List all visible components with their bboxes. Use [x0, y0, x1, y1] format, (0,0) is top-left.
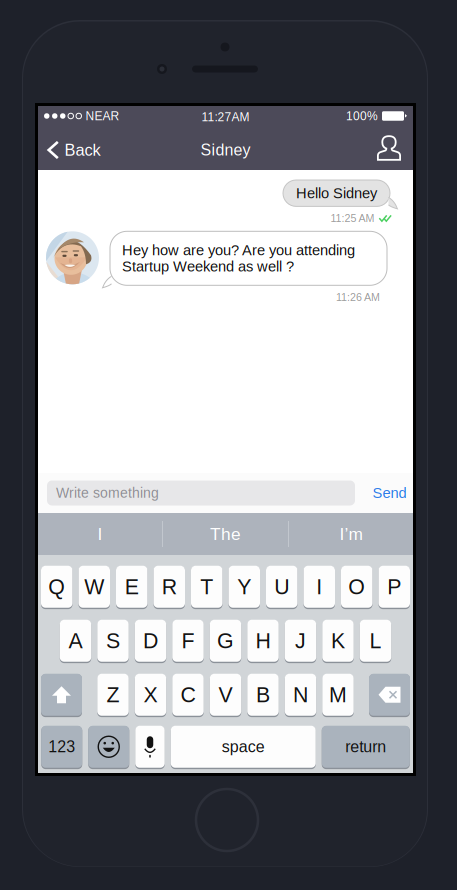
- button[interactable]: P: [378, 565, 410, 608]
- button[interactable]: K: [322, 619, 354, 662]
- button[interactable]: J: [285, 619, 316, 662]
- button[interactable]: Y: [228, 565, 260, 608]
- staticText: Hey how are you? Are you attending Start…: [122, 242, 355, 275]
- staticText: 11:26 AM: [336, 291, 380, 303]
- button[interactable]: I: [38, 513, 162, 555]
- staticText: U: [274, 575, 289, 599]
- button[interactable]: E: [116, 565, 147, 608]
- staticText: N: [293, 683, 308, 707]
- staticText: C: [180, 683, 195, 707]
- staticText: Hello Sidney: [296, 185, 377, 201]
- button[interactable]: Dictate: [135, 725, 165, 768]
- button[interactable]: Emoji: [88, 725, 129, 768]
- button[interactable]: Send: [366, 473, 413, 513]
- staticText: 100%: [346, 109, 378, 123]
- staticText: 11:25 AM: [330, 212, 374, 224]
- staticText: Y: [237, 575, 251, 599]
- button[interactable]: H: [247, 619, 279, 662]
- button[interactable]: Back: [38, 126, 108, 170]
- button[interactable]: S: [97, 619, 129, 662]
- button[interactable]: B: [247, 673, 279, 716]
- staticText: Q: [48, 575, 65, 599]
- button[interactable]: F: [172, 619, 204, 662]
- staticText: Send: [372, 485, 406, 501]
- staticText: I’m: [339, 524, 362, 544]
- staticText: J: [295, 629, 306, 653]
- button[interactable]: Q: [41, 565, 72, 608]
- staticText: Back: [64, 141, 100, 159]
- staticText: 123: [48, 738, 75, 756]
- staticText: A: [68, 629, 82, 653]
- button[interactable]: Contact info: [367, 126, 413, 170]
- staticText: 11:27AM: [201, 110, 249, 124]
- button[interactable]: I: [303, 565, 335, 608]
- button[interactable]: space: [171, 725, 316, 768]
- staticText: I: [316, 575, 322, 599]
- button[interactable]: T: [191, 565, 222, 608]
- staticText: H: [255, 629, 270, 653]
- staticText: return: [345, 738, 386, 756]
- staticText: O: [348, 575, 365, 599]
- button[interactable]: D: [135, 619, 166, 662]
- staticText: Sidney: [200, 141, 250, 159]
- button[interactable]: X: [135, 673, 166, 716]
- staticText: The: [210, 524, 241, 544]
- button[interactable]: Z: [97, 673, 129, 716]
- staticText: G: [217, 629, 234, 653]
- staticText: D: [143, 629, 158, 653]
- staticText: W: [84, 575, 104, 599]
- staticText: S: [106, 629, 120, 653]
- staticText: V: [218, 683, 232, 707]
- staticText: R: [162, 575, 177, 599]
- staticText: L: [369, 629, 381, 653]
- button[interactable]: V: [210, 673, 241, 716]
- staticText: space: [222, 738, 265, 756]
- button[interactable]: N: [285, 673, 316, 716]
- staticText: K: [331, 629, 345, 653]
- staticText: E: [125, 575, 139, 599]
- staticText: F: [181, 629, 194, 653]
- staticText: P: [387, 575, 401, 599]
- staticText: Z: [106, 683, 119, 707]
- button[interactable]: The: [163, 513, 288, 555]
- button[interactable]: O: [341, 565, 372, 608]
- button[interactable]: I’m: [289, 513, 413, 555]
- button[interactable]: A: [60, 619, 91, 662]
- button[interactable]: return: [322, 725, 410, 768]
- button[interactable]: L: [360, 619, 391, 662]
- staticText: Write something: [56, 485, 159, 501]
- button[interactable]: G: [210, 619, 241, 662]
- button[interactable]: W: [78, 565, 110, 608]
- button[interactable]: M: [322, 673, 354, 716]
- staticText: X: [143, 683, 157, 707]
- button[interactable]: Shift: [41, 673, 82, 716]
- staticText: T: [200, 575, 213, 599]
- button[interactable]: Delete: [369, 673, 410, 716]
- button[interactable]: C: [172, 673, 204, 716]
- button[interactable]: U: [266, 565, 297, 608]
- button[interactable]: 123: [41, 725, 82, 768]
- staticText: B: [256, 683, 270, 707]
- button[interactable]: R: [153, 565, 185, 608]
- staticText: I: [97, 524, 102, 544]
- staticText: M: [329, 683, 347, 707]
- staticText: NEAR: [85, 109, 119, 123]
